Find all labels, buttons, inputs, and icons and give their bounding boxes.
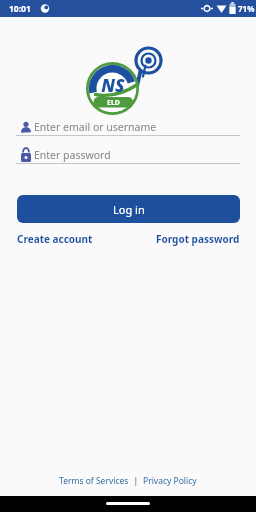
button[interactable]: Create account	[17, 232, 93, 246]
button[interactable]: Privacy Policy	[143, 475, 197, 487]
staticText: ELD	[94, 98, 133, 108]
staticText: Enter email or username	[34, 120, 157, 134]
staticText: NS	[94, 73, 132, 97]
staticText: Enter password	[34, 148, 111, 162]
staticText: |	[129, 475, 143, 487]
staticText: 10:01	[9, 3, 31, 15]
button[interactable]: Terms of Services	[59, 475, 129, 487]
staticText: 71%	[238, 3, 255, 14]
button[interactable]: Enter password	[14, 143, 242, 165]
button[interactable]: Log in	[17, 195, 240, 223]
button[interactable]: Forgot password	[156, 232, 240, 246]
staticText: Log in	[113, 202, 145, 217]
button[interactable]: Enter email or username	[14, 115, 242, 137]
